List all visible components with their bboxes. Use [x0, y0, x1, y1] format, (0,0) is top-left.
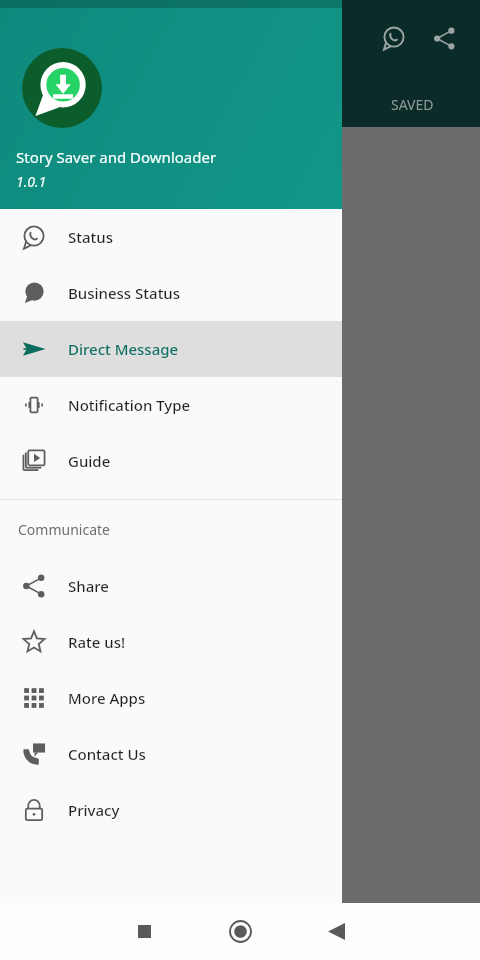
staticText: 1.0.1	[16, 172, 47, 191]
button[interactable]: SAVED	[345, 81, 480, 127]
staticText: Privacy	[68, 800, 120, 820]
button[interactable]: Notification Type	[0, 377, 342, 433]
button[interactable]: Contact Us	[0, 726, 342, 782]
button[interactable]: WhatsApp status	[372, 16, 416, 60]
staticText: Share	[68, 576, 109, 596]
staticText: More Apps	[68, 688, 146, 708]
button[interactable]: Share	[422, 16, 466, 60]
button[interactable]: Business Status	[0, 265, 342, 321]
button[interactable]: Home	[192, 903, 288, 960]
staticText: Guide	[68, 451, 111, 471]
button[interactable]: Share	[0, 558, 342, 614]
staticText: Contact Us	[68, 744, 146, 764]
staticText: Status	[68, 227, 114, 247]
staticText: Business Status	[68, 283, 181, 303]
button[interactable]: Privacy	[0, 782, 342, 838]
button[interactable]: Status	[0, 209, 342, 265]
staticText: Direct Message	[68, 339, 179, 359]
staticText: SAVED	[391, 95, 434, 114]
staticText: Communicate	[18, 520, 110, 539]
staticText: Rate us!	[68, 632, 126, 652]
button[interactable]: Direct Message	[0, 321, 342, 377]
button[interactable]: Back	[288, 903, 384, 960]
staticText: Notification Type	[68, 395, 191, 415]
button[interactable]: Rate us!	[0, 614, 342, 670]
button[interactable]: More Apps	[0, 670, 342, 726]
button[interactable]: Recent apps	[96, 903, 192, 960]
button[interactable]: Guide	[0, 433, 342, 489]
staticText: Story Saver and Downloader	[16, 147, 217, 167]
